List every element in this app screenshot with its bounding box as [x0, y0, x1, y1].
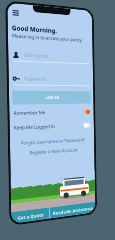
staticText: Remember Me [13, 109, 45, 116]
staticText: Keep Me Logged In [14, 123, 55, 131]
staticText: Good Morning. [12, 23, 57, 34]
button[interactable]: Remember Me [13, 108, 90, 116]
button[interactable]: Keep Me Logged In [14, 122, 90, 130]
button[interactable]: Forgot Username or Password? [10, 136, 94, 146]
staticText: Username [24, 52, 48, 60]
button[interactable]: Register a New Account [10, 146, 94, 157]
button[interactable]: LOG IN [12, 91, 91, 104]
staticText: Get a Quote [17, 211, 44, 221]
staticText: Roadside Assistance [53, 205, 94, 216]
staticText: Password [24, 75, 47, 83]
staticText: Please log in to access your policy. [12, 32, 83, 43]
button[interactable]: Menu [10, 7, 21, 18]
staticText: LOG IN [46, 95, 60, 100]
button[interactable]: Roadside Assistance [50, 202, 95, 218]
button[interactable]: Get a Quote [11, 208, 49, 224]
